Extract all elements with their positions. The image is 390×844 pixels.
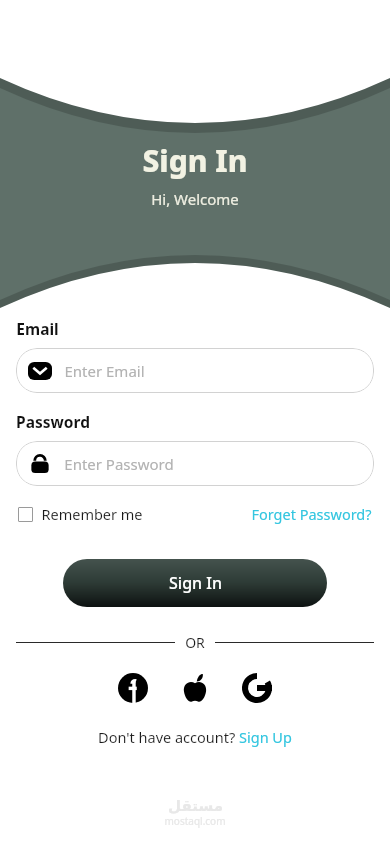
- button[interactable]: Sign In: [63, 559, 327, 607]
- button[interactable]: Enter Email: [16, 348, 374, 393]
- staticText: Remember me: [41, 504, 143, 524]
- staticText: مستقل: [168, 797, 223, 814]
- staticText: Email: [16, 318, 59, 339]
- staticText: Sign In: [169, 572, 222, 594]
- staticText: Hi, Welcome: [151, 189, 239, 209]
- staticText: OR: [185, 633, 205, 652]
- staticText: Forget Password?: [251, 504, 372, 524]
- staticText: Password: [16, 411, 90, 432]
- staticText: Sign In: [142, 140, 248, 181]
- staticText: Enter Password: [64, 454, 174, 474]
- staticText: mostaql.com: [164, 814, 226, 828]
- button[interactable]: Enter Password: [16, 441, 374, 486]
- button[interactable]: Sign in with Google: [235, 666, 279, 710]
- button[interactable]: Sign in with Facebook: [111, 666, 155, 710]
- button[interactable]: Forget Password?: [249, 500, 374, 528]
- staticText: Don't have account? Sign Up: [98, 727, 292, 747]
- staticText: Enter Email: [64, 361, 145, 381]
- button[interactable]: Remember me: [16, 500, 145, 528]
- button[interactable]: Don't have account? Sign Up: [16, 724, 374, 750]
- button[interactable]: Sign in with Apple: [173, 666, 217, 710]
